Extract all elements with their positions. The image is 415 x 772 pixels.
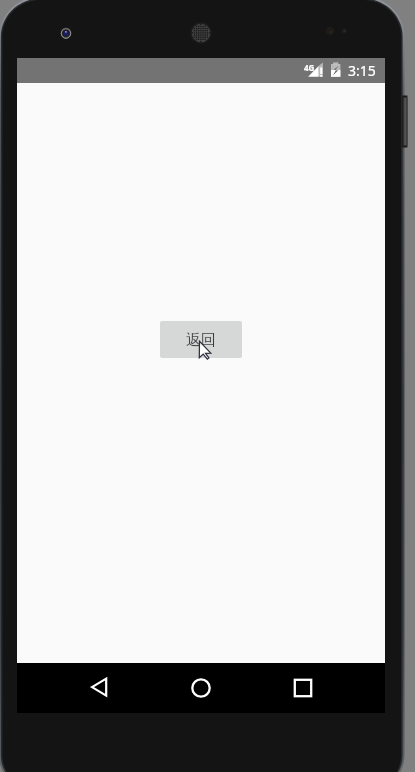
staticText: 3:15 bbox=[348, 61, 376, 80]
button[interactable]: Back bbox=[79, 673, 109, 703]
staticText: 返回 bbox=[186, 331, 216, 350]
staticText: 4G bbox=[304, 62, 315, 73]
button[interactable]: 返回 bbox=[160, 321, 242, 358]
button[interactable]: Recent apps bbox=[291, 676, 315, 700]
button[interactable]: Home bbox=[189, 676, 213, 700]
